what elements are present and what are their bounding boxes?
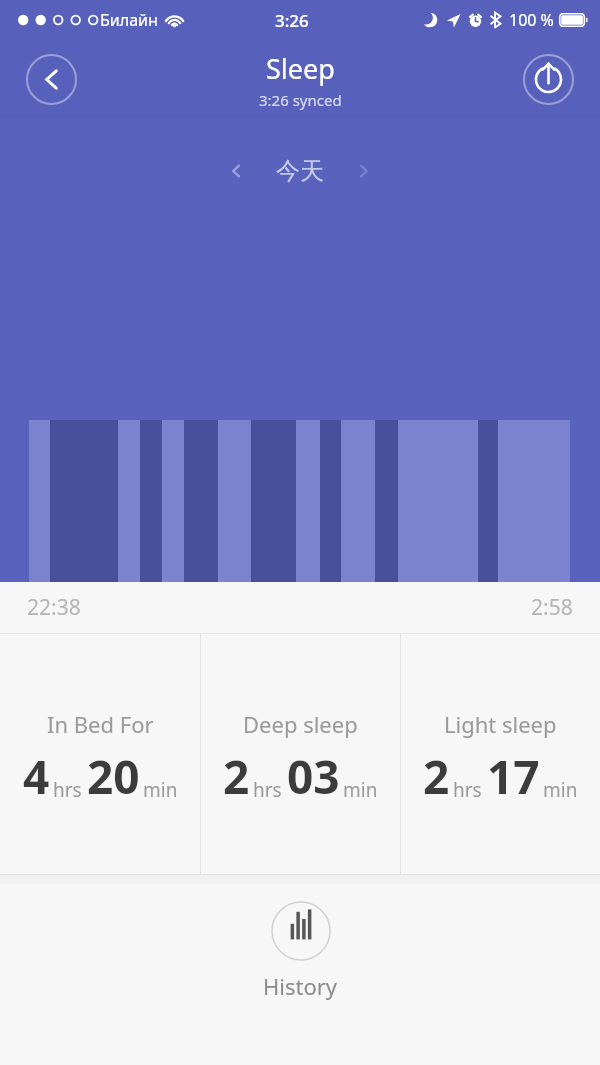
button[interactable]: Sync	[523, 54, 574, 105]
staticText: Deep sleep	[243, 709, 358, 739]
staticText: Sleep	[266, 50, 335, 87]
staticText: 3:26	[275, 9, 309, 32]
staticText: hrs	[53, 777, 82, 803]
button[interactable]: Previous day	[214, 149, 258, 193]
staticText: Light sleep	[444, 709, 557, 739]
staticText: 03	[287, 745, 340, 808]
staticText: 20	[87, 745, 140, 808]
staticText: min	[343, 777, 378, 803]
button[interactable]: Next day	[342, 149, 386, 193]
staticText: 2:58	[531, 593, 573, 622]
staticText: Билайн	[100, 9, 158, 31]
staticText: 22:38	[27, 593, 81, 622]
button[interactable]: History	[263, 901, 338, 1001]
staticText: 4	[23, 745, 50, 808]
staticText: 100 %	[509, 9, 554, 31]
staticText: 2	[223, 745, 250, 808]
staticText: min	[543, 777, 578, 803]
button[interactable]: In Bed For	[0, 634, 200, 874]
staticText: History	[263, 971, 338, 1001]
staticText: 17	[487, 745, 540, 808]
staticText: In Bed For	[47, 709, 154, 739]
button[interactable]: Deep sleep	[201, 634, 400, 874]
button[interactable]: Back	[26, 54, 77, 105]
button[interactable]: Light sleep	[401, 634, 600, 874]
staticText: 3:26 synced	[259, 90, 342, 110]
staticText: hrs	[253, 777, 282, 803]
button[interactable]: 今天	[276, 156, 324, 186]
staticText: 2	[423, 745, 450, 808]
staticText: hrs	[453, 777, 482, 803]
staticText: min	[143, 777, 178, 803]
